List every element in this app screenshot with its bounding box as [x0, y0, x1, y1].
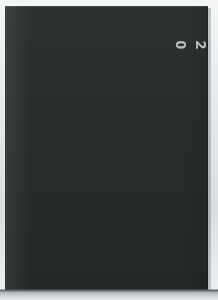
button[interactable]: 2026 planner cover	[5, 6, 208, 291]
staticText: 2026	[166, 37, 212, 53]
